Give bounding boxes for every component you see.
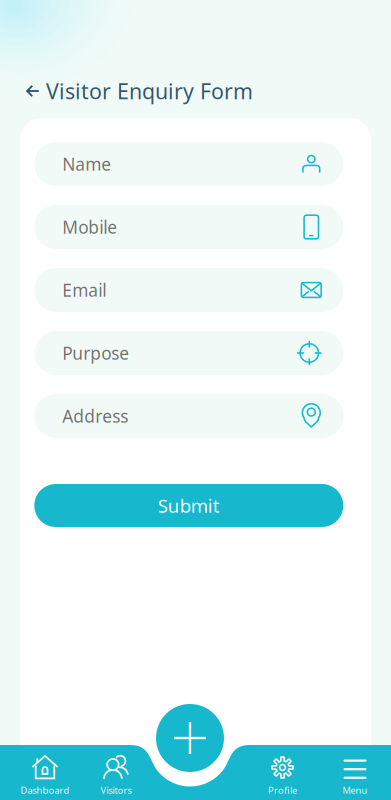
button[interactable]: Address [34, 394, 343, 438]
button[interactable]: Profile [249, 755, 315, 800]
staticText: Profile [268, 784, 297, 796]
staticText: Name [62, 152, 111, 175]
button[interactable]: Back [20, 77, 46, 105]
staticText: Address [62, 404, 128, 427]
button[interactable]: Purpose [34, 331, 343, 375]
staticText: Submit [158, 493, 220, 518]
button[interactable]: Submit [34, 484, 343, 527]
button[interactable]: Menu [322, 755, 388, 800]
staticText: Visitor Enquiry Form [46, 77, 253, 105]
staticText: Mobile [62, 215, 117, 238]
button[interactable]: Name [34, 142, 343, 186]
button[interactable]: Visitors [83, 755, 149, 800]
button[interactable]: Email [34, 268, 343, 312]
button[interactable]: Mobile [34, 205, 343, 249]
button[interactable]: Dashboard [12, 755, 78, 800]
staticText: Menu [342, 784, 367, 796]
staticText: Purpose [62, 341, 129, 364]
staticText: Email [62, 278, 106, 301]
staticText: Visitors [100, 784, 131, 796]
staticText: Dashboard [20, 784, 69, 796]
button[interactable]: Add [156, 704, 224, 772]
